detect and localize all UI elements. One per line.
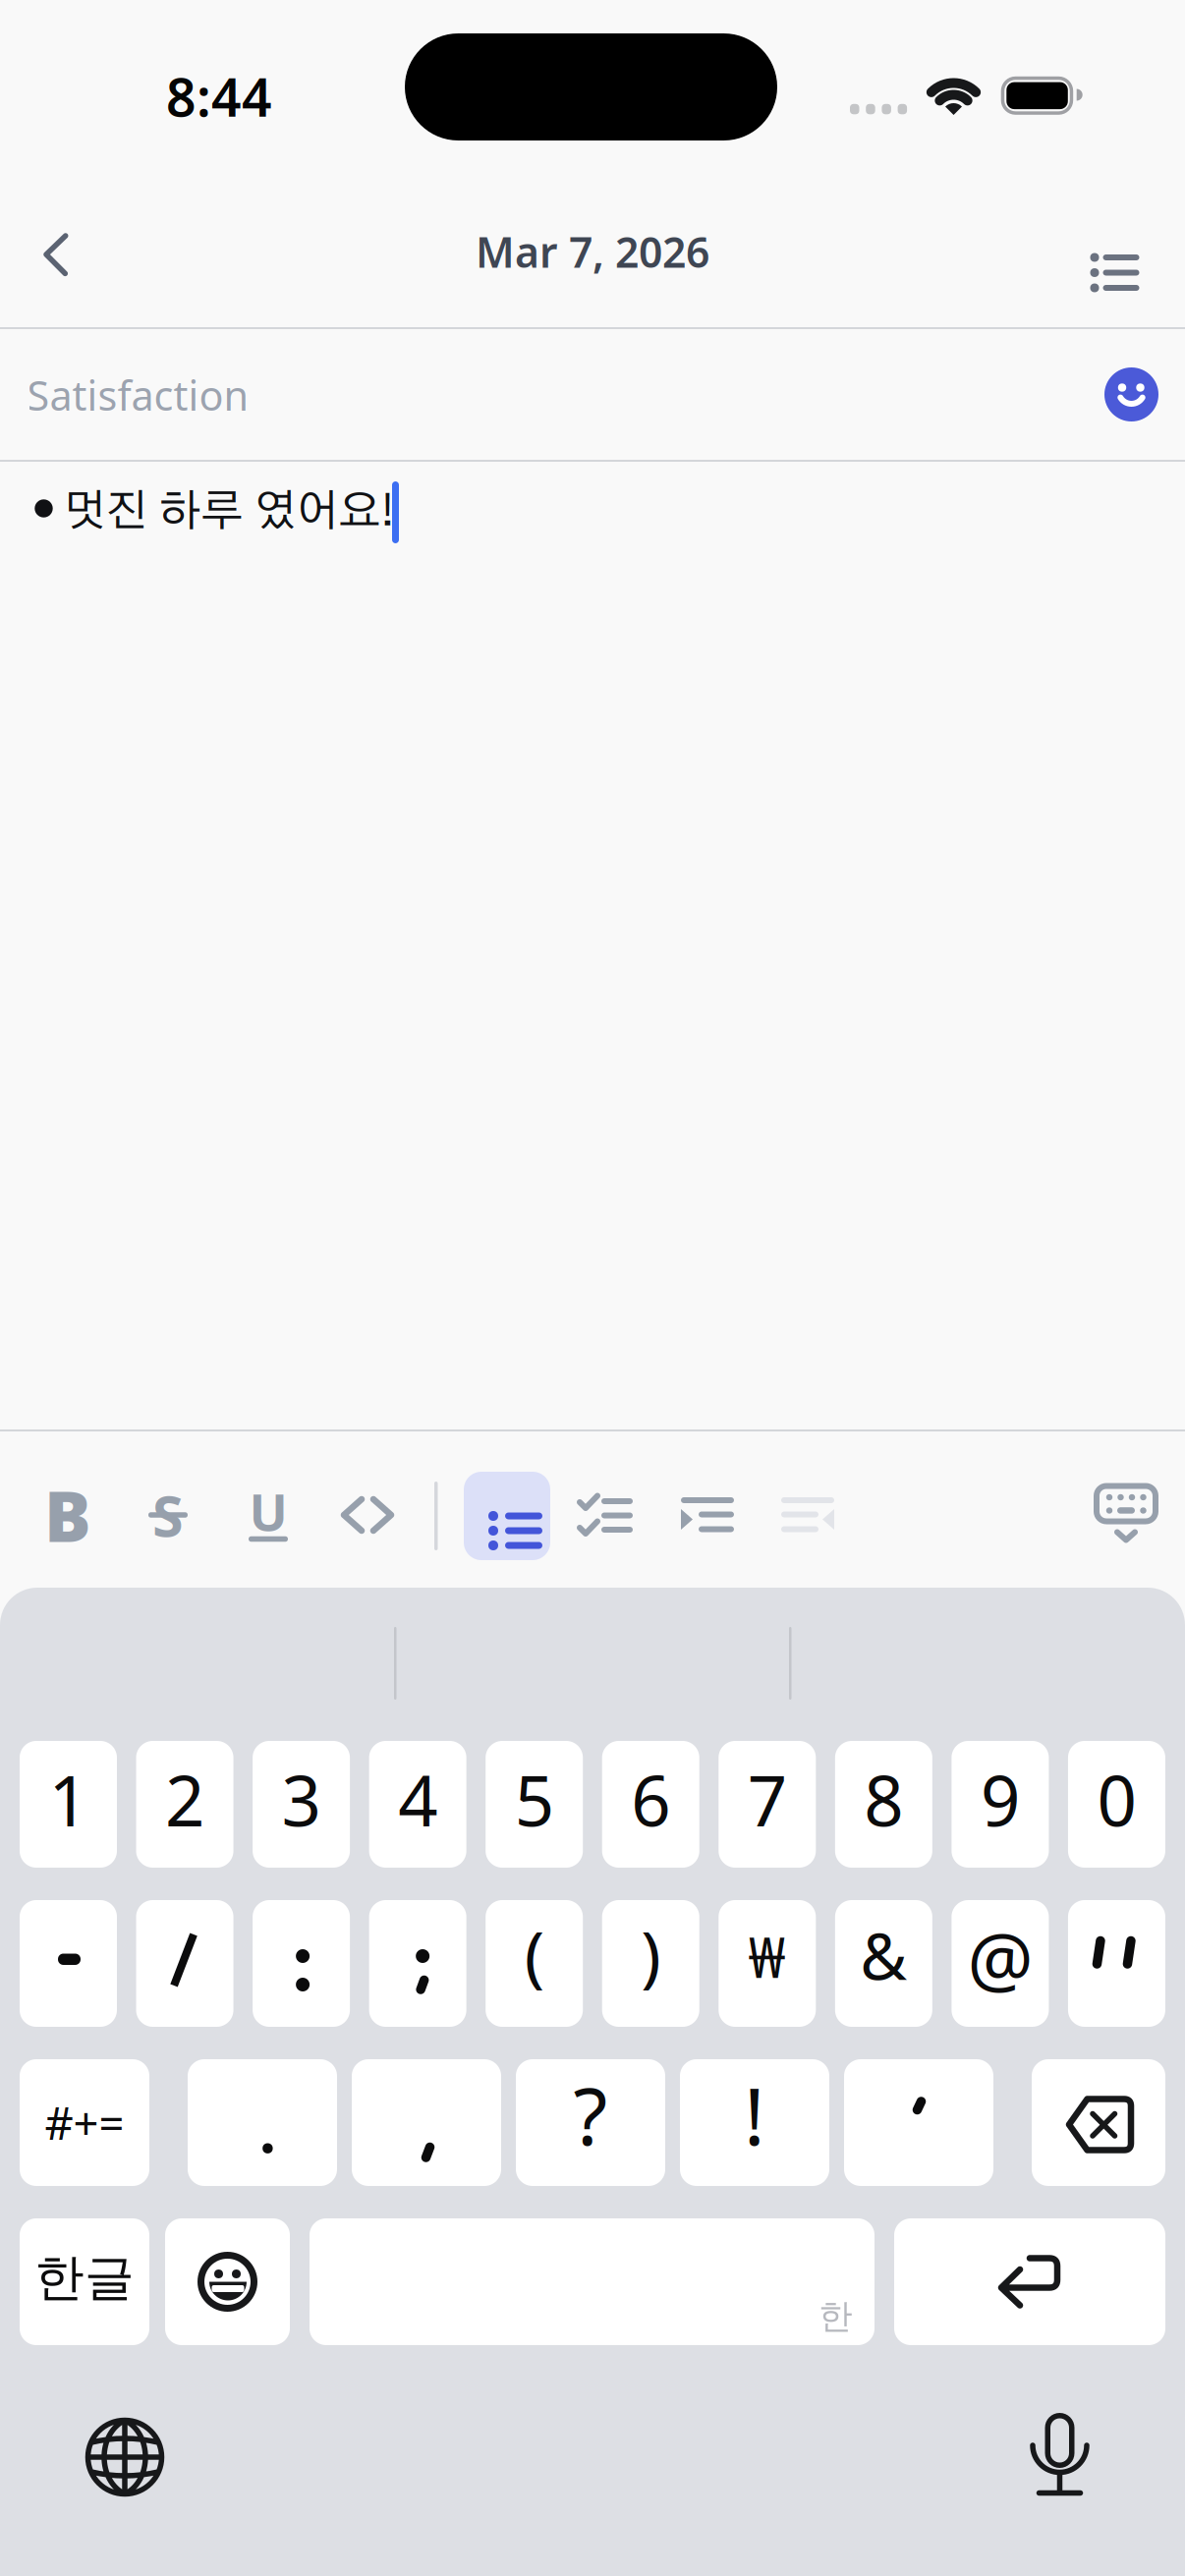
staticText: 한글 xyxy=(34,2247,135,2308)
button[interactable]: Space xyxy=(310,2218,875,2345)
button[interactable]: #+= xyxy=(20,2059,149,2186)
staticText: 6 xyxy=(631,1753,670,1845)
button[interactable]: 7 xyxy=(719,1741,816,1868)
staticText: #+= xyxy=(45,2093,124,2152)
button[interactable]: 9 xyxy=(952,1741,1049,1868)
staticText: 7 xyxy=(748,1753,787,1845)
staticText: 1 xyxy=(49,1753,88,1845)
button[interactable]: Emoji xyxy=(165,2218,290,2345)
button[interactable]: Hyphen xyxy=(20,1900,117,2027)
button[interactable]: Apostrophe xyxy=(844,2059,993,2186)
staticText: Satisfaction xyxy=(27,368,249,422)
button[interactable]: Strikethrough xyxy=(129,1472,207,1558)
staticText: 멋진 하루 였어요! xyxy=(63,490,395,534)
button[interactable]: 8 xyxy=(835,1741,932,1868)
button[interactable]: Entries xyxy=(1082,234,1133,277)
staticText: 8 xyxy=(864,1753,903,1845)
button[interactable]: & xyxy=(835,1900,932,2027)
staticText: Mar 7, 2026 xyxy=(476,224,709,279)
button[interactable]: Underline xyxy=(229,1472,308,1558)
button[interactable]: 3 xyxy=(253,1741,350,1868)
button[interactable]: Dismiss keyboard xyxy=(1083,1470,1169,1556)
button[interactable]: Next keyboard xyxy=(85,2418,164,2496)
staticText: & xyxy=(860,1912,907,1998)
button[interactable]: 1 xyxy=(20,1741,117,1868)
staticText: B xyxy=(44,1469,91,1561)
staticText: U xyxy=(249,1477,287,1545)
staticText: S xyxy=(152,1478,184,1552)
button[interactable]: Dictate xyxy=(1033,2413,1087,2495)
button[interactable]: ( xyxy=(486,1900,583,2027)
staticText: 0 xyxy=(1097,1753,1136,1845)
button[interactable]: Indent xyxy=(668,1472,747,1558)
button[interactable]: Mood xyxy=(1104,367,1158,421)
button[interactable]: ₩ xyxy=(719,1900,816,2027)
button[interactable]: 한글 xyxy=(20,2218,149,2345)
button[interactable]: ! xyxy=(680,2059,829,2186)
button[interactable]: Bold xyxy=(28,1472,107,1558)
staticText: 8:44 xyxy=(166,62,272,131)
button[interactable]: Bulleted list xyxy=(464,1472,550,1560)
button[interactable]: Checklist xyxy=(566,1472,645,1558)
staticText: ₩ xyxy=(749,1920,786,1993)
staticText: 5 xyxy=(515,1753,554,1845)
button[interactable]: ) xyxy=(602,1900,699,2027)
button[interactable]: Return xyxy=(894,2218,1165,2345)
button[interactable]: 4 xyxy=(369,1741,466,1868)
staticText: 9 xyxy=(981,1753,1020,1845)
button[interactable]: Quote xyxy=(1068,1900,1165,2027)
staticText: 4 xyxy=(398,1753,437,1845)
button[interactable]: Slash xyxy=(136,1900,233,2027)
button[interactable]: Outdent xyxy=(768,1472,847,1558)
staticText: 3 xyxy=(282,1753,321,1845)
staticText: 2 xyxy=(165,1753,204,1845)
button[interactable]: ? xyxy=(516,2059,665,2186)
staticText: ) xyxy=(641,1909,660,1998)
button[interactable]: 5 xyxy=(486,1741,583,1868)
button[interactable]: 0 xyxy=(1068,1741,1165,1868)
button[interactable]: @ xyxy=(952,1900,1049,2027)
button[interactable]: Colon xyxy=(253,1900,350,2027)
button[interactable]: 2 xyxy=(136,1741,233,1868)
button[interactable]: Delete xyxy=(1032,2059,1165,2186)
staticText: @ xyxy=(967,1909,1033,2006)
button[interactable]: 6 xyxy=(602,1741,699,1868)
button[interactable]: Code xyxy=(328,1472,407,1558)
staticText: 한 xyxy=(818,2295,853,2337)
staticText: ( xyxy=(524,1909,544,1998)
staticText: ? xyxy=(573,2063,608,2167)
staticText: ! xyxy=(744,2063,765,2167)
button[interactable]: Semicolon xyxy=(369,1900,466,2027)
button[interactable]: Comma xyxy=(352,2059,501,2186)
button[interactable]: Period xyxy=(188,2059,337,2186)
button[interactable]: Back xyxy=(43,232,69,278)
